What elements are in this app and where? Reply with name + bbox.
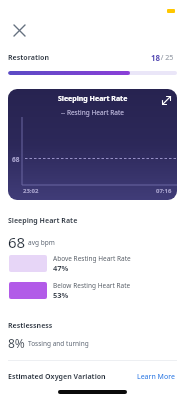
staticText: Above Resting Heart Rate bbox=[53, 254, 131, 263]
staticText: Estimated Oxygen Variation bbox=[8, 372, 106, 382]
staticText: 18 bbox=[151, 52, 161, 63]
staticText: 07:16 bbox=[156, 187, 172, 195]
staticText: Sleeping Heart Rate bbox=[8, 216, 78, 226]
staticText: Restoration bbox=[8, 53, 49, 63]
staticText: 53% bbox=[53, 290, 69, 300]
staticText: -- Resting Heart Rate bbox=[61, 108, 124, 117]
button[interactable]: Expand chart bbox=[158, 92, 174, 108]
staticText: 47% bbox=[53, 263, 69, 273]
staticText: Restlessness bbox=[8, 321, 53, 331]
staticText: 68 bbox=[12, 155, 20, 164]
staticText: Below Resting Heart Rate bbox=[53, 281, 131, 290]
staticText: 8% bbox=[8, 335, 25, 351]
staticText: 68 bbox=[8, 232, 26, 252]
button[interactable]: Close bbox=[7, 18, 31, 42]
staticText: Sleeping Heart Rate bbox=[58, 94, 128, 104]
staticText: avg bpm bbox=[28, 238, 55, 247]
staticText: / 25 bbox=[159, 53, 174, 63]
staticText: 23:02 bbox=[23, 187, 39, 195]
staticText: Tossing and turning bbox=[28, 339, 89, 348]
button[interactable]: Learn More bbox=[137, 372, 175, 382]
